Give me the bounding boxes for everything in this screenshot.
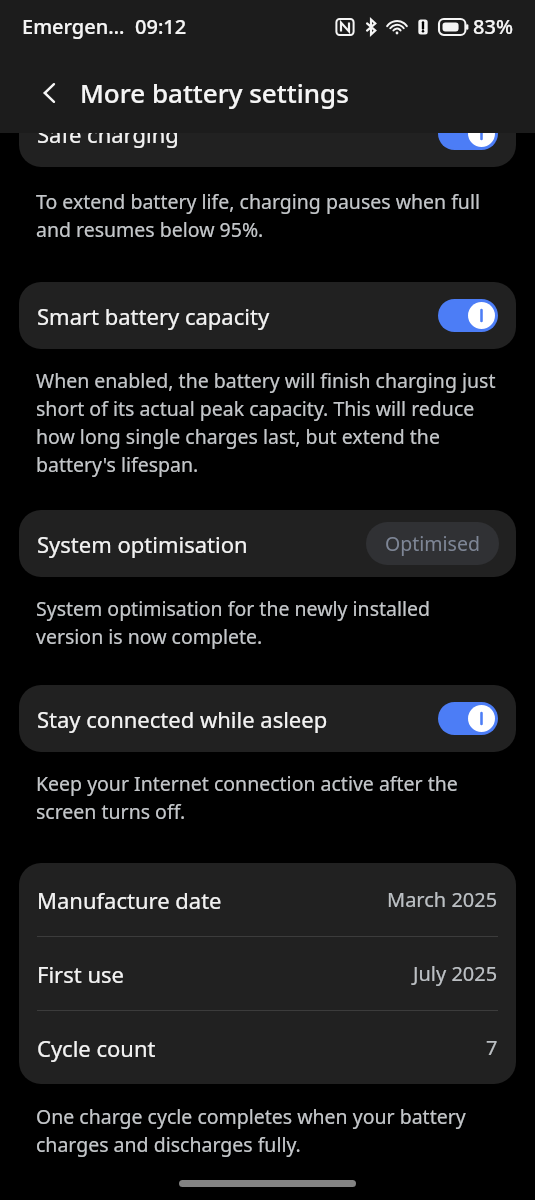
staticText: July 2025 (413, 960, 498, 987)
staticText: First use (37, 959, 413, 989)
staticText: To extend battery life, charging pauses … (36, 188, 497, 243)
button[interactable]: Back (30, 73, 70, 113)
button[interactable]: Optimised (366, 522, 499, 565)
staticText: Cycle count (37, 1033, 486, 1063)
button[interactable]: Stay connected while asleep (19, 685, 516, 752)
button[interactable]: Smart battery capacity (19, 282, 516, 349)
staticText: Optimised (385, 530, 480, 557)
staticText: 83% (473, 13, 513, 40)
staticText: Emergen… (22, 13, 125, 40)
staticText: 7 (486, 1034, 498, 1061)
staticText: One charge cycle completes when your bat… (36, 1103, 497, 1158)
button[interactable]: Stay connected while asleep (438, 702, 498, 735)
staticText: When enabled, the battery will finish ch… (36, 367, 497, 478)
staticText: March 2025 (387, 886, 498, 913)
staticText: More battery settings (80, 75, 349, 110)
button[interactable]: Cycle count (19, 1011, 516, 1084)
staticText: Keep your Internet connection active aft… (36, 770, 497, 825)
button[interactable]: System optimisation (19, 510, 516, 577)
button[interactable]: First use (19, 937, 516, 1010)
button[interactable]: Safe charging (19, 100, 516, 167)
button[interactable]: Safe charging (438, 117, 498, 150)
staticText: Smart battery capacity (37, 301, 438, 331)
button[interactable]: Smart battery capacity (438, 299, 498, 332)
staticText: System optimisation (37, 529, 366, 559)
staticText: 09:12 (135, 13, 187, 40)
staticText: System optimisation for the newly instal… (36, 595, 497, 650)
staticText: Manufacture date (37, 885, 387, 915)
button[interactable]: Manufacture date (19, 863, 516, 936)
staticText: Safe charging (37, 119, 438, 149)
staticText: Stay connected while asleep (37, 704, 438, 734)
